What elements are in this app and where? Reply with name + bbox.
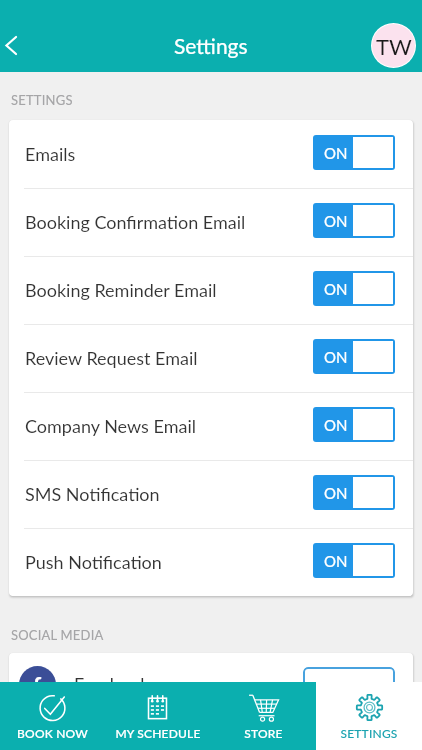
staticText: ON bbox=[324, 416, 348, 434]
button[interactable]: Review Request Email bbox=[9, 324, 413, 392]
button[interactable]: BOOK NOW bbox=[0, 682, 105, 750]
button[interactable]: Toggle on bbox=[313, 135, 395, 170]
staticText: Emails bbox=[25, 143, 313, 165]
staticText: SETTINGS bbox=[340, 726, 398, 740]
button[interactable]: MY SCHEDULE bbox=[105, 682, 210, 750]
button[interactable]: STORE bbox=[210, 682, 316, 750]
button[interactable]: SETTINGS bbox=[316, 682, 422, 750]
staticText: SMS Notification bbox=[25, 483, 313, 505]
staticText: TW bbox=[376, 33, 412, 59]
staticText: f bbox=[33, 671, 42, 699]
staticText: MY SCHEDULE bbox=[115, 726, 201, 740]
button[interactable]: Booking Confirmation Email bbox=[9, 188, 413, 256]
staticText: ON bbox=[324, 144, 348, 162]
button[interactable]: Toggle on bbox=[313, 475, 395, 510]
staticText: Company News Email bbox=[25, 415, 313, 437]
staticText: ON bbox=[324, 280, 348, 298]
staticText: Review Request Email bbox=[25, 347, 313, 369]
button[interactable]: SMS Notification bbox=[9, 460, 413, 528]
staticText: BOOK NOW bbox=[17, 726, 88, 740]
button[interactable]: Toggle on bbox=[313, 203, 395, 238]
staticText: ON bbox=[324, 552, 348, 570]
staticText: Booking Reminder Email bbox=[25, 279, 313, 301]
staticText: Booking Confirmation Email bbox=[25, 211, 313, 233]
staticText: Facebook bbox=[74, 673, 303, 695]
staticText: Push Notification bbox=[25, 551, 313, 573]
button[interactable]: Toggle on bbox=[313, 543, 395, 578]
staticText: Settings bbox=[174, 33, 248, 58]
staticText: SETTINGS bbox=[11, 92, 73, 108]
staticText: ON bbox=[324, 212, 348, 230]
button[interactable]: TW bbox=[372, 24, 415, 67]
button[interactable]: Push Notification bbox=[9, 528, 413, 596]
button[interactable]: Booking Reminder Email bbox=[9, 256, 413, 324]
button[interactable]: Emails bbox=[9, 120, 413, 188]
button[interactable]: Toggle on bbox=[313, 339, 395, 374]
button[interactable]: Company News Email bbox=[9, 392, 413, 460]
button[interactable]: Toggle off bbox=[303, 667, 395, 701]
staticText: SOCIAL MEDIA bbox=[11, 627, 104, 643]
button[interactable]: Back bbox=[0, 23, 22, 67]
button[interactable]: Toggle on bbox=[313, 271, 395, 306]
staticText: STORE bbox=[244, 726, 283, 740]
button[interactable]: Toggle on bbox=[313, 407, 395, 442]
button[interactable]: f bbox=[9, 653, 413, 715]
staticText: ON bbox=[324, 484, 348, 502]
staticText: ON bbox=[324, 348, 348, 366]
